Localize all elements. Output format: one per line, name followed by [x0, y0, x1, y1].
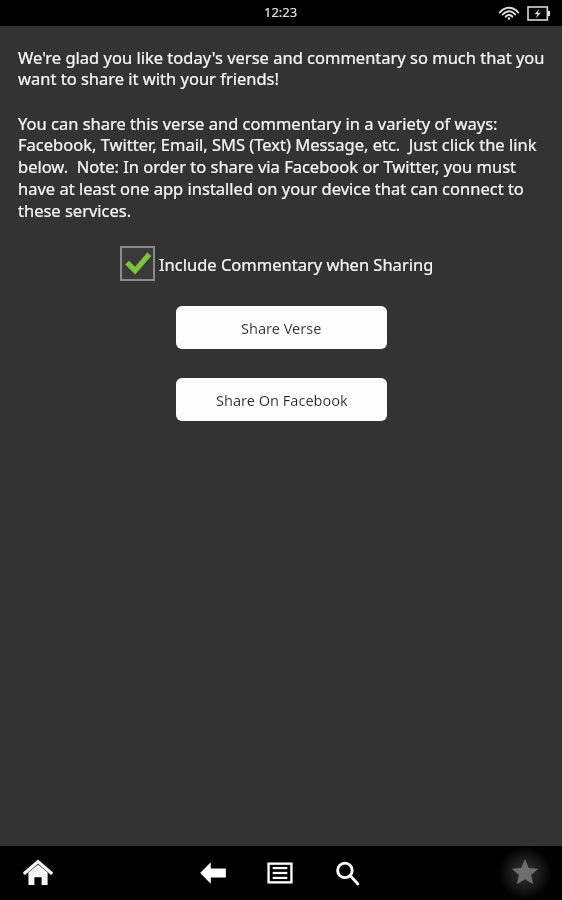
staticText: Share On Facebook: [216, 390, 348, 410]
button[interactable]: Search: [321, 847, 373, 899]
staticText: Include Commentary when Sharing: [159, 253, 434, 275]
button[interactable]: List: [254, 847, 306, 899]
staticText: You can share this verse and commentary …: [18, 112, 548, 222]
staticText: 12:23: [264, 3, 298, 21]
button[interactable]: Share Verse: [176, 306, 387, 349]
button[interactable]: Back: [187, 847, 239, 899]
button[interactable]: Include Commentary when Sharing: [120, 246, 434, 281]
button[interactable]: Share On Facebook: [176, 378, 387, 421]
button[interactable]: Home: [12, 847, 64, 899]
staticText: We're glad you like today's verse and co…: [18, 46, 548, 90]
staticText: Share Verse: [241, 318, 322, 338]
button[interactable]: Favorite: [498, 846, 552, 900]
